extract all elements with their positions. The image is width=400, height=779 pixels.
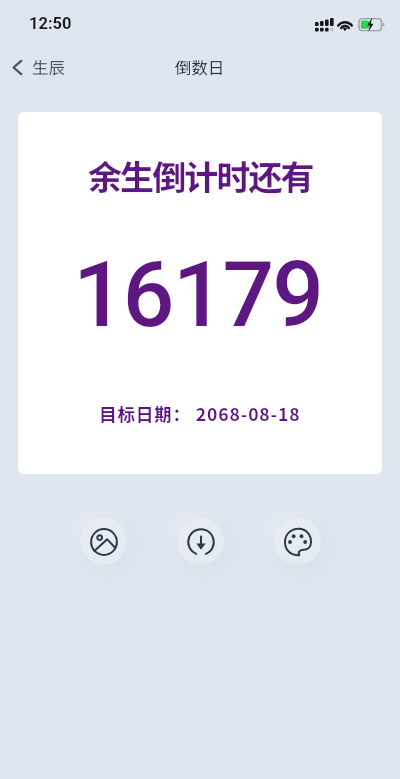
staticText: 余生倒计时还有 [88, 151, 313, 200]
staticText: 目标日期： 2068-08-18 [99, 401, 301, 426]
staticText: 12:50 [29, 14, 72, 33]
button[interactable]: Download [177, 518, 224, 565]
button[interactable]: Choose image [80, 518, 127, 565]
staticText: 倒数日 [175, 55, 225, 79]
staticText: 16179 [73, 242, 323, 349]
button[interactable]: 生辰 [0, 49, 77, 85]
staticText: 生辰 [32, 55, 65, 79]
button[interactable]: Change theme [274, 518, 321, 565]
